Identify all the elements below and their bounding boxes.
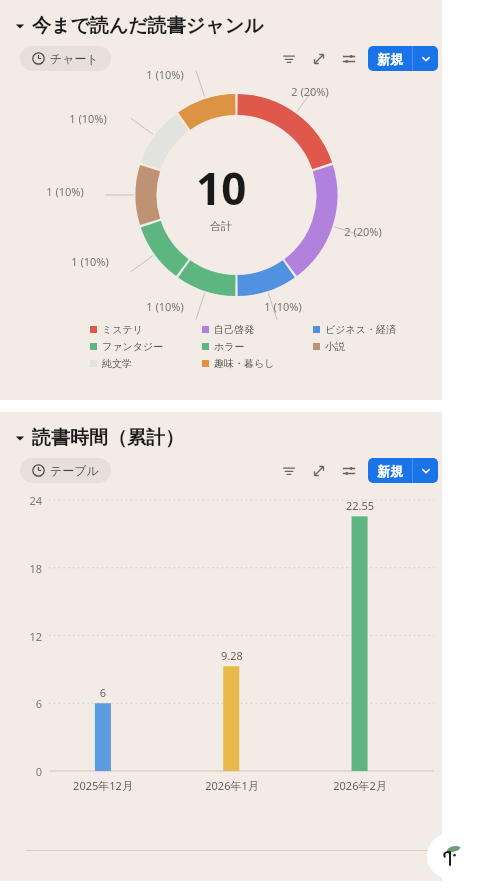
staticText: チャート (50, 51, 99, 66)
staticText: 自己啓発 (214, 323, 254, 336)
staticText: 1 (10%) (253, 299, 313, 314)
button[interactable]: 自己啓発 (202, 323, 313, 336)
button[interactable]: 趣味・暮らし (202, 357, 313, 370)
staticText: 6 (49, 685, 157, 700)
button[interactable]: テーブル (20, 458, 111, 483)
button[interactable]: Expand (307, 47, 331, 71)
button[interactable]: Filter (277, 47, 301, 71)
staticText: 22.55 (306, 498, 414, 513)
staticText: 2026年2月 (306, 778, 414, 793)
staticText: 2 (20%) (333, 224, 393, 239)
staticText: 1 (10%) (58, 111, 118, 126)
staticText: ミステリ (102, 323, 143, 336)
staticText: 新規 (377, 51, 403, 67)
staticText: 2 (20%) (280, 84, 340, 99)
button[interactable]: ビジネス・経済 (313, 323, 424, 336)
button[interactable]: Expand (307, 459, 331, 483)
staticText: 1 (10%) (60, 254, 120, 269)
staticText: 1 (10%) (135, 67, 195, 82)
staticText: 小説 (325, 340, 345, 353)
button[interactable]: Settings (337, 459, 361, 483)
button[interactable]: More options (413, 46, 438, 71)
button[interactable]: More options (413, 458, 438, 483)
staticText: 2026年1月 (178, 778, 286, 793)
staticText: 1 (10%) (135, 299, 195, 314)
staticText: 6 (10, 696, 42, 711)
staticText: 24 (10, 493, 42, 508)
staticText: 2025年12月 (49, 778, 157, 793)
staticText: 趣味・暮らし (214, 357, 275, 370)
button[interactable]: 新規 (368, 46, 412, 71)
staticText: 1 (10%) (35, 184, 95, 199)
button[interactable]: Filter (277, 459, 301, 483)
button[interactable]: ミステリ (90, 323, 202, 336)
staticText: 10 (196, 158, 247, 218)
staticText: 0 (10, 764, 42, 779)
staticText: 純文学 (102, 357, 132, 370)
staticText: ファンタジー (102, 340, 164, 353)
staticText: テーブル (50, 463, 99, 478)
button[interactable]: ホラー (202, 340, 313, 353)
button[interactable]: Plant (427, 833, 473, 879)
button[interactable]: チャート (20, 46, 111, 71)
button[interactable]: Settings (337, 47, 361, 71)
staticText: 合計 (210, 219, 232, 233)
staticText: 9.28 (178, 648, 286, 663)
staticText: 18 (10, 561, 42, 576)
staticText: 12 (10, 629, 42, 644)
button[interactable]: ファンタジー (90, 340, 202, 353)
staticText: 新規 (377, 463, 403, 479)
staticText: ホラー (214, 340, 245, 353)
staticText: ビジネス・経済 (325, 323, 396, 336)
staticText: 読書時間（累計） (32, 426, 184, 450)
button[interactable]: 小説 (313, 340, 424, 353)
staticText: 今まで読んだ読書ジャンル (32, 14, 264, 38)
button[interactable]: 純文学 (90, 357, 202, 370)
button[interactable]: 新規 (368, 458, 412, 483)
